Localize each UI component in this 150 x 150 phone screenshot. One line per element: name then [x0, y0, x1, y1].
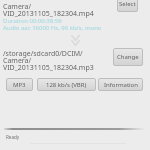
staticText: Camera/ [3, 56, 32, 66]
other: Convert [70, 34, 81, 47]
staticText: Information [104, 81, 138, 89]
staticText: 128 kb/s (VBR) [46, 81, 87, 89]
staticText: Duration 00:00:38:56 [3, 17, 62, 25]
staticText: MP3 [13, 81, 26, 89]
button[interactable]: Select [117, 0, 138, 12]
button[interactable]: MP3 [6, 78, 33, 91]
button[interactable]: Information [98, 78, 143, 91]
staticText: Audio aac 16000 Hz, 96 kb/s, mono [3, 24, 102, 32]
button[interactable]: Change [113, 48, 143, 66]
staticText: Ready [6, 134, 20, 140]
staticText: VID_20131105_182304.mp4 [3, 9, 94, 19]
button[interactable]: 128 kb/s (VBR) [37, 78, 96, 91]
staticText: Select [119, 0, 136, 8]
staticText: VID_20131105_182304.mp3 [3, 63, 94, 73]
staticText: Change [117, 53, 139, 61]
staticText: /storage/sdcard0/DCIM/ [3, 49, 83, 59]
staticText: Camera/ [3, 2, 32, 12]
